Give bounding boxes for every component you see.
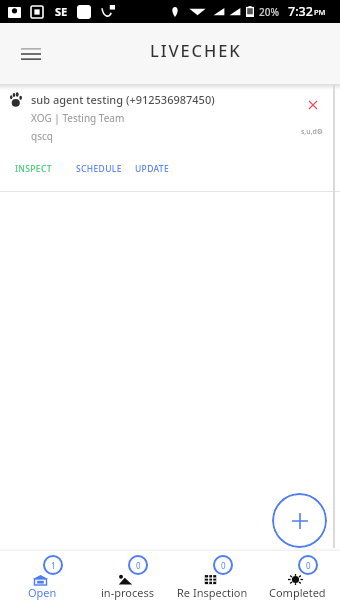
button[interactable]: Add bbox=[272, 493, 327, 548]
staticText: 0 bbox=[221, 560, 226, 571]
staticText: SE bbox=[55, 4, 68, 19]
staticText: sub agent testing (+912536987450) bbox=[31, 92, 215, 107]
staticText: s,u,d⚙ bbox=[301, 127, 324, 137]
staticText: LIVECHEK bbox=[150, 39, 242, 61]
staticText: 1 bbox=[51, 560, 56, 571]
staticText: qscq bbox=[31, 129, 53, 143]
staticText: 0 bbox=[136, 560, 141, 571]
button[interactable]: 0 bbox=[255, 551, 340, 606]
staticText: 0 bbox=[306, 560, 311, 571]
button[interactable]: Cancel bbox=[304, 96, 322, 114]
button[interactable]: sub agent testing (+912536987450) bbox=[0, 84, 340, 192]
staticText: Completed bbox=[269, 585, 326, 600]
staticText: XOG | Testing Team bbox=[31, 111, 125, 125]
staticText: 7:32 bbox=[288, 3, 313, 20]
staticText: 20% bbox=[259, 5, 279, 19]
staticText: Open bbox=[28, 585, 57, 600]
button[interactable]: 0 bbox=[85, 551, 170, 606]
button[interactable]: SCHEDULE bbox=[76, 163, 122, 175]
button[interactable]: UPDATE bbox=[135, 163, 170, 175]
button[interactable]: 1 bbox=[0, 551, 85, 606]
staticText: Re Inspection bbox=[177, 585, 248, 600]
button[interactable]: Menu bbox=[12, 35, 50, 73]
staticText: in-process bbox=[101, 585, 154, 600]
staticText: PM bbox=[314, 7, 326, 17]
button[interactable]: INSPECT bbox=[15, 163, 52, 175]
button[interactable]: 0 bbox=[170, 551, 255, 606]
